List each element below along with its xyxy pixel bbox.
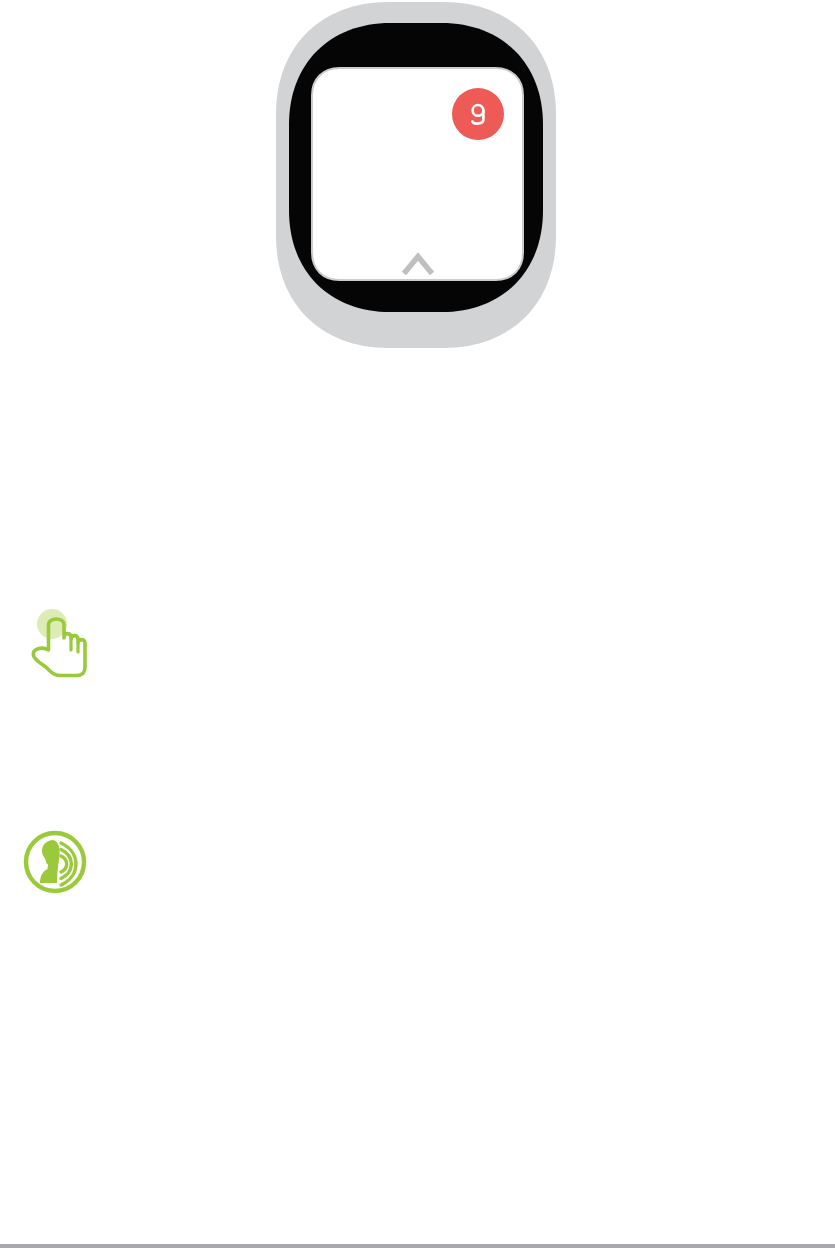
button[interactable]: Voice command: [23, 830, 87, 894]
button[interactable]: Tap: [24, 605, 94, 681]
button[interactable]: Expand: [398, 247, 438, 283]
button[interactable]: Google app: [452, 88, 504, 140]
